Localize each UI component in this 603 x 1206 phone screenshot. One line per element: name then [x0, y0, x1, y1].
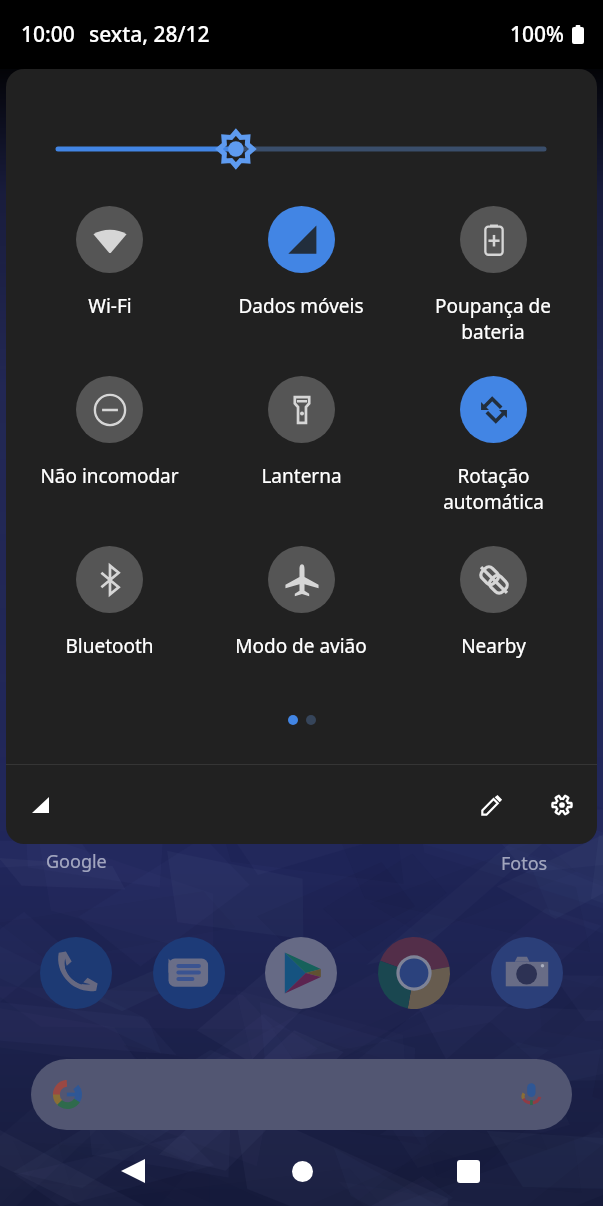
button[interactable]: Edit: [468, 781, 516, 829]
button[interactable]: Lanterna: [205, 376, 397, 489]
staticText: Fotos: [501, 851, 548, 876]
button[interactable]: Mobile signal: [16, 781, 64, 829]
staticText: Modo de avião: [235, 633, 367, 659]
staticText: Não incomodar: [40, 463, 179, 489]
button[interactable]: Settings: [538, 781, 586, 829]
button[interactable]: Modo de avião: [205, 546, 397, 659]
staticText: Nearby: [461, 633, 526, 659]
staticText: Google: [46, 849, 107, 874]
button[interactable]: Poupança de bateria: [397, 206, 589, 344]
staticText: 10:00: [21, 20, 75, 49]
button[interactable]: Home: [267, 1136, 337, 1206]
staticText: Rotação automática: [443, 463, 544, 514]
button[interactable]: Nearby: [397, 546, 589, 659]
staticText: sexta, 28/12: [89, 20, 210, 49]
button[interactable]: Dados móveis: [205, 206, 397, 319]
button[interactable]: Recents: [433, 1136, 503, 1206]
button[interactable]: App: [153, 937, 225, 1009]
button[interactable]: Bluetooth: [14, 546, 205, 659]
staticText: Poupança de bateria: [435, 293, 551, 344]
staticText: 100%: [510, 20, 564, 49]
staticText: Bluetooth: [65, 633, 154, 659]
button[interactable]: App: [265, 937, 337, 1009]
staticText: Lanterna: [261, 463, 342, 489]
button[interactable]: App: [491, 937, 563, 1009]
staticText: Wi-Fi: [88, 293, 132, 319]
button[interactable]: Rotação automática: [397, 376, 589, 514]
button[interactable]: Wi-Fi: [14, 206, 205, 319]
button[interactable]: App: [40, 937, 112, 1009]
button[interactable]: [31, 1059, 572, 1130]
button[interactable]: Não incomodar: [14, 376, 205, 489]
button[interactable]: App: [378, 937, 450, 1009]
staticText: Dados móveis: [238, 293, 364, 319]
button[interactable]: Back: [98, 1136, 168, 1206]
